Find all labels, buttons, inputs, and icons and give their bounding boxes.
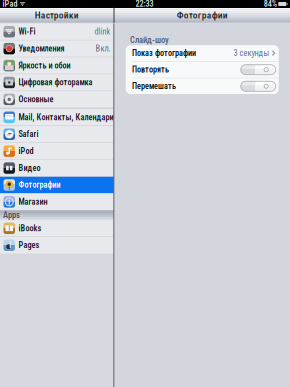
button[interactable]: Настройки bbox=[0, 7, 113, 23]
staticText: Wi-Fi bbox=[18, 27, 35, 37]
staticText: Mail, Контакты, Календари bbox=[18, 112, 113, 122]
button[interactable]: iPod bbox=[0, 143, 113, 159]
staticText: iBooks bbox=[18, 223, 41, 233]
staticText: Повторять bbox=[132, 65, 169, 75]
button[interactable]: Уведомления bbox=[0, 40, 113, 57]
staticText: Показ фотографии bbox=[132, 48, 196, 58]
staticText: Цифровая фоторамка bbox=[18, 78, 92, 87]
staticText: Основные bbox=[18, 94, 53, 104]
staticText: Фотографии bbox=[177, 9, 228, 21]
button[interactable]: Показ фотографии bbox=[126, 45, 279, 61]
staticText: 22:33 bbox=[135, 0, 153, 9]
staticText: dlink bbox=[94, 27, 110, 37]
button[interactable]: Повторять bbox=[126, 62, 279, 78]
staticText: Магазин bbox=[18, 197, 47, 207]
staticText: Видео bbox=[18, 163, 40, 173]
button[interactable]: iBooks bbox=[0, 220, 113, 236]
staticText: iPad bbox=[2, 0, 17, 9]
staticText: 3 секунды bbox=[233, 48, 269, 58]
staticText: Уведомления bbox=[18, 44, 64, 53]
button[interactable]: Видео bbox=[0, 160, 113, 176]
staticText: Вкл. bbox=[95, 44, 110, 53]
staticText: Слайд-шоу bbox=[130, 35, 169, 45]
staticText: Pages bbox=[18, 240, 39, 250]
button[interactable]: Safari bbox=[0, 126, 113, 142]
button[interactable]: Pages bbox=[0, 237, 113, 253]
staticText: Safari bbox=[18, 129, 38, 139]
staticText: 84% bbox=[264, 0, 277, 9]
button[interactable]: Перемешать bbox=[126, 78, 279, 94]
staticText: iPod bbox=[18, 146, 33, 156]
button[interactable]: Цифровая фоторамка bbox=[0, 74, 113, 91]
button[interactable]: Фотографии bbox=[0, 177, 113, 193]
button[interactable]: Wi-Fi bbox=[0, 23, 113, 40]
button[interactable]: Фотографии bbox=[114, 7, 290, 23]
button[interactable]: Основные bbox=[0, 91, 113, 108]
staticText: Яркость и обои bbox=[18, 61, 70, 70]
staticText: Apps bbox=[3, 210, 20, 220]
staticText: Фотографии bbox=[18, 180, 60, 190]
staticText: Настройки bbox=[35, 9, 79, 21]
button[interactable]: Mail, Контакты, Календари bbox=[0, 109, 113, 125]
button[interactable]: Яркость и обои bbox=[0, 57, 113, 74]
button[interactable]: Магазин bbox=[0, 194, 113, 210]
staticText: Перемешать bbox=[132, 81, 176, 91]
